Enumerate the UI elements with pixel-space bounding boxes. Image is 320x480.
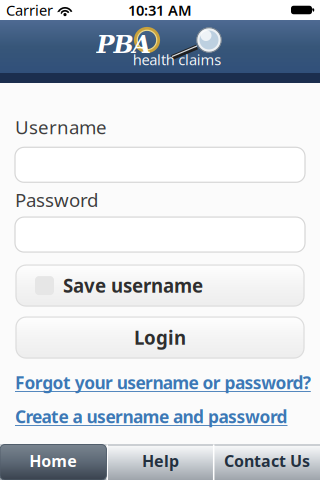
staticText: Create a username and password (15, 405, 287, 428)
button[interactable]: Home (0, 444, 106, 480)
button[interactable]: Forgot your username or password? (15, 371, 311, 394)
staticText: Forgot your username or password? (15, 371, 311, 394)
button[interactable]: Login (16, 317, 304, 358)
button[interactable]: Save username (16, 265, 304, 306)
staticText: Help (142, 450, 179, 471)
staticText: Carrier (6, 0, 53, 20)
staticText: 10:31 AM (128, 0, 192, 20)
staticText: Username (15, 114, 107, 139)
staticText: health claims (133, 50, 221, 69)
button[interactable]: Help (108, 444, 213, 480)
staticText: Password (15, 187, 98, 212)
staticText: PBA (96, 30, 151, 59)
staticText: Home (29, 450, 77, 471)
staticText: Login (134, 325, 186, 350)
button[interactable]: Create a username and password (15, 405, 287, 428)
staticText: Save username (63, 273, 203, 298)
button[interactable]: Contact Us (214, 444, 319, 480)
staticText: Contact Us (224, 450, 310, 471)
